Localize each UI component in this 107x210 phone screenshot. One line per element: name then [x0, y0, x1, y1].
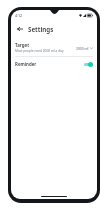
button[interactable]: Back [15, 24, 24, 33]
staticText: Settings [28, 25, 54, 33]
button[interactable]: Reminder toggle [84, 62, 93, 67]
staticText: 2000 ml [76, 46, 89, 50]
button[interactable]: Reminder [11, 57, 97, 71]
staticText: Target [15, 42, 30, 48]
staticText: Reminder [15, 61, 84, 67]
staticText: 4:12 [15, 13, 23, 18]
button[interactable]: Target [11, 39, 97, 56]
staticText: Most people need 2000 ml a day [15, 49, 64, 53]
